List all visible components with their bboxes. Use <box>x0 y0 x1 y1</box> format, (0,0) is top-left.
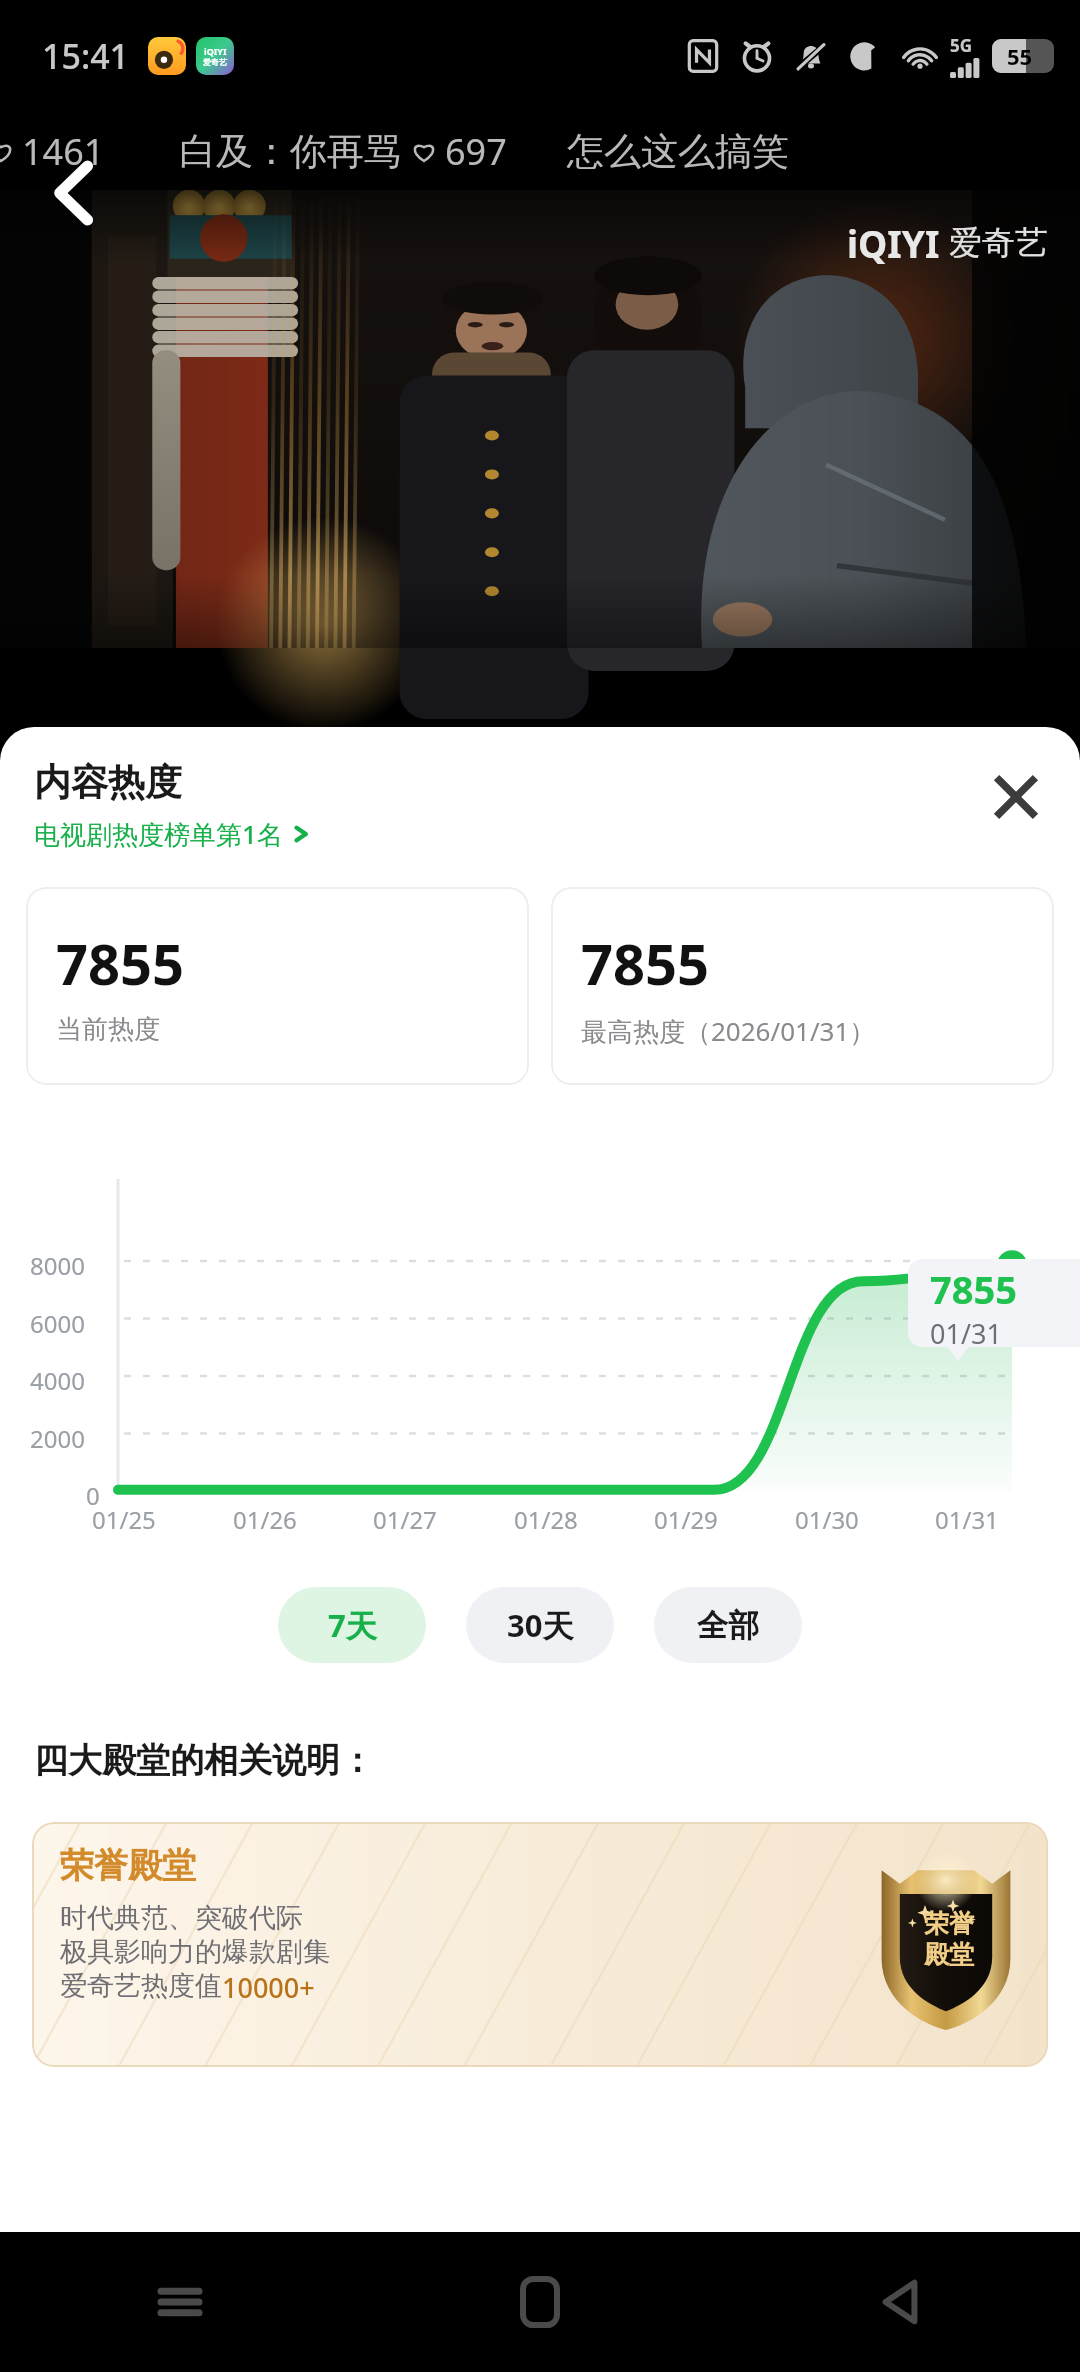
staticText: 7855 <box>581 925 710 1001</box>
staticText: 8000 <box>30 1249 85 1282</box>
staticText: 55 <box>1007 41 1033 71</box>
staticText: 内容热度 <box>34 759 182 806</box>
staticText: 爱奇艺 <box>949 222 1048 264</box>
staticText: 1461 <box>22 127 105 176</box>
staticText: 2000 <box>30 1422 85 1455</box>
staticText: 荣誉殿堂 <box>60 1844 196 1887</box>
button[interactable]: Back <box>720 2232 1080 2372</box>
staticText: 白及：你再骂 <box>179 128 401 175</box>
staticText: 697 <box>445 127 507 176</box>
button[interactable]: 电视剧热度榜单第1名 <box>34 816 311 852</box>
staticText: 四大殿堂的相关说明： <box>34 1739 374 1782</box>
button[interactable]: 7855 <box>26 887 529 1085</box>
staticText: 电视剧热度榜单第1名 <box>34 816 283 852</box>
staticText: 01/25 <box>92 1503 156 1536</box>
staticText: 极具影响力的爆款剧集 <box>60 1935 330 1969</box>
button[interactable]: Recents <box>0 2232 360 2372</box>
staticText: 时代典范、突破代际 <box>60 1901 303 1935</box>
staticText: 7天 <box>328 1604 377 1646</box>
button[interactable]: 7天 <box>278 1587 426 1663</box>
button[interactable]: 7855 <box>551 887 1054 1085</box>
staticText: 4000 <box>30 1364 85 1397</box>
staticText: 01/31 <box>930 1315 1002 1347</box>
staticText: 最高热度（2026/01/31） <box>581 1013 876 1049</box>
staticText: 01/30 <box>795 1503 859 1536</box>
button[interactable]: 30天 <box>466 1587 614 1663</box>
staticText: iQIYI <box>204 45 227 57</box>
staticText: 荣誉 <box>924 1908 974 1939</box>
staticText: 7855 <box>930 1263 1017 1315</box>
staticText: 当前热度 <box>56 1013 160 1046</box>
staticText: 01/31 <box>935 1503 999 1536</box>
button[interactable]: Back <box>30 148 120 238</box>
staticText: 0 <box>86 1479 100 1512</box>
staticText: 01/29 <box>654 1503 718 1536</box>
staticText: iQIYI <box>847 218 940 268</box>
button[interactable]: 全部 <box>654 1587 802 1663</box>
staticText: 01/27 <box>373 1503 437 1536</box>
button[interactable]: Close <box>978 759 1054 835</box>
staticText: 爱奇艺 <box>203 57 227 67</box>
button[interactable]: 荣誉殿堂 <box>32 1822 1048 2067</box>
staticText: 30天 <box>507 1604 574 1646</box>
staticText: 6000 <box>30 1307 85 1340</box>
staticText: 15:41 <box>42 33 130 79</box>
staticText: 全部 <box>697 1606 759 1645</box>
staticText: 7855 <box>56 925 185 1001</box>
staticText: 10000+ <box>222 1969 315 2006</box>
staticText: 01/26 <box>233 1503 297 1536</box>
staticText: 殿堂 <box>924 1939 974 1970</box>
button[interactable]: Home <box>360 2232 720 2372</box>
staticText: 5G <box>950 34 973 57</box>
staticText: 怎么这么搞笑 <box>567 128 789 175</box>
staticText: 爱奇艺热度值 <box>60 1969 222 2003</box>
staticText: 01/28 <box>514 1503 578 1536</box>
